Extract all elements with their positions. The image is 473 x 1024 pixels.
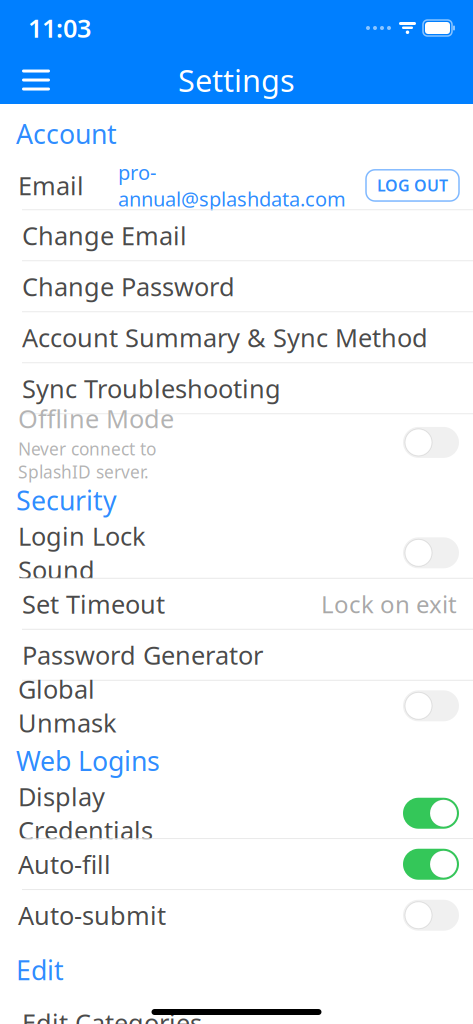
staticText: 11:03 — [28, 11, 91, 45]
staticText: Web Logins — [16, 743, 160, 778]
button[interactable]: Sync Troubleshooting — [0, 363, 473, 413]
staticText: pro-annual@splashdata.com — [118, 159, 346, 212]
button[interactable]: Menu — [12, 59, 60, 100]
staticText: Sync Troubleshooting — [22, 372, 281, 405]
staticText: Email — [18, 169, 84, 202]
button[interactable]: Toggle off — [403, 900, 459, 931]
staticText: Change Password — [22, 270, 235, 303]
staticText: Edit Categories — [22, 1006, 202, 1024]
button[interactable]: Edit Categories — [0, 998, 473, 1024]
staticText: LOG OUT — [377, 175, 448, 196]
button[interactable]: Account Summary & Sync Method — [0, 312, 473, 362]
button[interactable]: Toggle on — [403, 798, 459, 829]
staticText: Security — [16, 482, 117, 518]
staticText: Edit — [16, 952, 64, 988]
staticText: Account Summary & Sync Method — [22, 321, 428, 354]
button[interactable]: LOG OUT — [366, 170, 459, 201]
staticText: Offline Mode — [18, 402, 174, 435]
staticText: Display Credentials — [18, 780, 153, 847]
staticText: Global Unmask — [18, 672, 117, 739]
button[interactable]: Toggle off — [403, 537, 459, 568]
staticText: Never connect to SplashID server. — [18, 437, 156, 483]
button[interactable]: Toggle off — [403, 690, 459, 721]
staticText: Password Generator — [22, 638, 263, 672]
staticText: Login Lock Sound — [18, 519, 146, 586]
button[interactable]: Password Generator — [0, 630, 473, 680]
button[interactable]: Change Password — [0, 261, 473, 311]
button[interactable]: Set Timeout — [0, 579, 473, 629]
button[interactable]: Change Email — [0, 210, 473, 260]
button[interactable]: Toggle off — [403, 427, 459, 458]
staticText: Account — [16, 116, 117, 151]
staticText: Settings — [178, 60, 295, 100]
staticText: Lock on exit — [321, 588, 457, 620]
staticText: Auto-submit — [18, 898, 166, 932]
staticText: Auto-fill — [18, 847, 111, 881]
staticText: Change Email — [22, 219, 187, 252]
staticText: Set Timeout — [22, 587, 165, 621]
button[interactable]: Toggle on — [403, 849, 459, 880]
